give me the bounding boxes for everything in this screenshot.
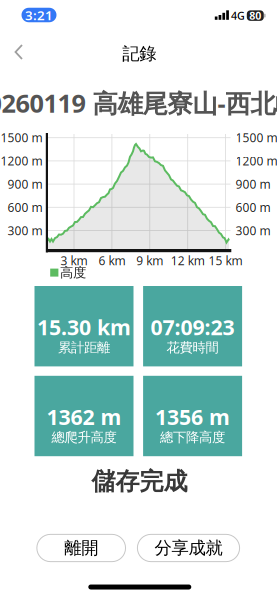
staticText: 4G (231, 8, 245, 23)
staticText: 儲存完成 (91, 467, 187, 496)
staticText: 6 km (98, 252, 125, 268)
staticText: 總爬升高度 (51, 429, 116, 445)
staticText: 1362 m (46, 403, 121, 431)
staticText: 3 km (60, 252, 87, 268)
staticText: 記錄 (122, 43, 156, 64)
button[interactable]: 離開 (37, 534, 126, 562)
staticText: 15 km (209, 252, 243, 268)
staticText: 900 m (235, 176, 270, 192)
staticText: 900 m (7, 176, 42, 192)
staticText: 1500 m (235, 130, 277, 146)
staticText: 分享成就 (154, 537, 222, 559)
staticText: 9 km (136, 252, 163, 268)
staticText: 1500 m (0, 130, 42, 146)
staticText: 12 km (171, 252, 205, 268)
staticText: 300 m (7, 222, 42, 238)
staticText: 1200 m (0, 153, 42, 169)
staticText: 高度 (60, 264, 86, 281)
staticText: 花費時間 (167, 339, 219, 356)
button[interactable]: 分享成就 (137, 534, 240, 562)
staticText: 3:21 (25, 6, 53, 24)
staticText: 離開 (64, 537, 98, 559)
staticText: 300 m (235, 222, 270, 238)
staticText: 1200 m (235, 153, 277, 169)
staticText: 20260119 高雄尾寮山-西北峰 (0, 86, 277, 120)
staticText: 累計距離 (58, 339, 110, 356)
staticText: 15.30 km (37, 313, 131, 341)
staticText: 600 m (7, 199, 42, 215)
staticText: 80 (249, 8, 261, 23)
staticText: 總下降高度 (160, 429, 225, 445)
staticText: 07:09:23 (151, 313, 235, 341)
staticText: 600 m (235, 199, 270, 215)
button[interactable] (14, 44, 23, 60)
staticText: 1356 m (155, 403, 230, 431)
